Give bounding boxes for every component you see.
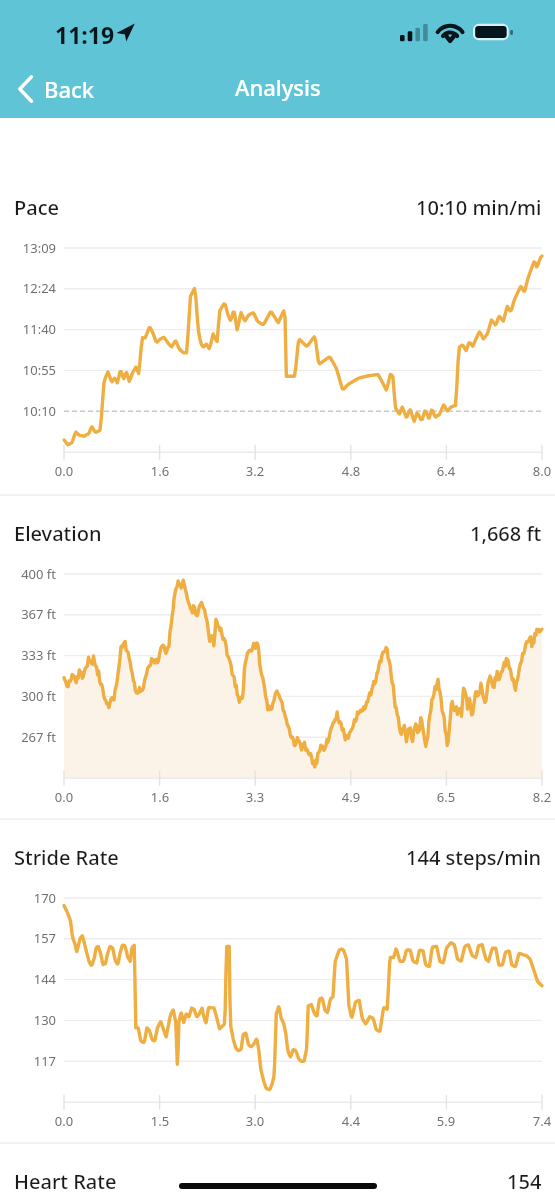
staticText: 7.4 xyxy=(517,1112,555,1130)
staticText: Pace xyxy=(14,194,59,221)
staticText: 144 steps/min xyxy=(406,844,542,871)
staticText: 300 ft xyxy=(0,687,56,705)
staticText: 1.5 xyxy=(135,1112,185,1130)
staticText: 117 xyxy=(0,1052,56,1070)
staticText: 170 xyxy=(0,889,56,907)
button[interactable]: Back xyxy=(18,74,105,104)
staticText: 4.9 xyxy=(326,788,376,806)
staticText: 8.0 xyxy=(517,462,555,480)
staticText: 157 xyxy=(0,929,56,947)
staticText: 11:40 xyxy=(0,320,56,338)
staticText: 3.2 xyxy=(230,462,280,480)
staticText: 10:10 xyxy=(0,402,56,420)
button[interactable]: Stride Rate xyxy=(0,820,555,1142)
staticText: 130 xyxy=(0,1011,56,1029)
button[interactable]: Pace xyxy=(0,118,555,494)
staticText: 6.5 xyxy=(421,788,471,806)
staticText: 333 ft xyxy=(0,646,56,664)
staticText: 8.2 xyxy=(517,788,555,806)
staticText: 12:24 xyxy=(0,279,56,297)
staticText: 10:10 min/mi xyxy=(416,194,542,221)
staticText: 1,668 ft xyxy=(470,520,542,547)
staticText: 3.3 xyxy=(230,788,280,806)
staticText: 1.6 xyxy=(135,462,185,480)
staticText: 5.9 xyxy=(421,1112,471,1130)
staticText: Stride Rate xyxy=(14,844,119,871)
staticText: 0.0 xyxy=(39,462,89,480)
staticText: 154 xyxy=(507,1168,542,1195)
staticText: Heart Rate xyxy=(14,1168,117,1195)
staticText: 367 ft xyxy=(0,605,56,623)
staticText: 400 ft xyxy=(0,565,56,583)
button[interactable]: Elevation xyxy=(0,496,555,818)
staticText: 11:19 xyxy=(55,19,115,50)
button[interactable]: Heart Rate xyxy=(0,1144,555,1195)
staticText: 13:09 xyxy=(0,239,56,257)
staticText: 4.8 xyxy=(326,462,376,480)
staticText: 1.6 xyxy=(135,788,185,806)
staticText: 10:55 xyxy=(0,361,56,379)
staticText: 267 ft xyxy=(0,728,56,746)
staticText: 0.0 xyxy=(39,788,89,806)
staticText: 3.0 xyxy=(230,1112,280,1130)
staticText: Elevation xyxy=(14,520,102,547)
staticText: 0.0 xyxy=(39,1112,89,1130)
staticText: Back xyxy=(44,74,95,104)
staticText: 6.4 xyxy=(421,462,471,480)
staticText: 144 xyxy=(0,970,56,988)
staticText: Analysis xyxy=(235,72,321,102)
staticText: 4.4 xyxy=(326,1112,376,1130)
